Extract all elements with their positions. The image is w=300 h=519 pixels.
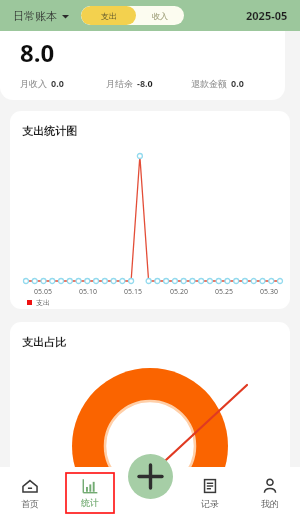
staticText: 05.05	[34, 287, 52, 297]
staticText: 05.15	[124, 287, 142, 297]
button[interactable]: 统计	[66, 473, 114, 513]
button[interactable]: Add record	[128, 454, 173, 499]
staticText: -8.0	[137, 77, 153, 89]
staticText: 05.10	[79, 287, 97, 297]
staticText: 2025-05	[246, 8, 288, 23]
staticText: 月收入	[20, 78, 47, 89]
button[interactable]: 我的	[240, 467, 300, 519]
staticText: 05.30	[260, 287, 278, 297]
staticText: 支出统计图	[22, 124, 77, 138]
staticText: 记录	[201, 498, 219, 509]
staticText: 05.25	[215, 287, 233, 297]
staticText: 首页	[21, 498, 39, 509]
button[interactable]: 日常账本	[13, 9, 69, 23]
button[interactable]: 首页	[0, 467, 60, 519]
staticText: 收入	[152, 11, 168, 21]
button[interactable]: 支出	[81, 6, 136, 25]
staticText: 支出	[101, 11, 117, 21]
button[interactable]: 记录	[180, 467, 240, 519]
staticText: 日常账本	[13, 9, 57, 23]
staticText: 统计	[81, 497, 99, 508]
staticText: 退款金额	[191, 78, 227, 89]
staticText: 支出	[36, 298, 50, 307]
button[interactable]: 2025-05	[246, 8, 288, 23]
staticText: 支出占比	[22, 335, 66, 349]
staticText: 8.0	[20, 36, 55, 69]
staticText: 05.20	[170, 287, 188, 297]
staticText: 0.0	[231, 77, 244, 89]
button[interactable]: 收入	[136, 6, 184, 25]
staticText: 0.0	[51, 77, 64, 89]
staticText: 我的	[261, 498, 279, 509]
staticText: 月结余	[106, 78, 133, 89]
